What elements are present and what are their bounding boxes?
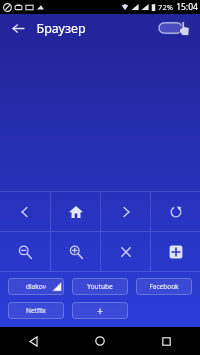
button[interactable]: diakov — [8, 278, 64, 295]
button[interactable]: Переключатель — [158, 18, 192, 38]
button[interactable]: Уменьшить — [0, 232, 50, 271]
button[interactable]: Закрыть — [101, 232, 150, 271]
button[interactable]: Обновить — [151, 192, 200, 231]
button[interactable]: Netflix — [8, 302, 64, 319]
button[interactable]: Вперёд — [101, 192, 150, 231]
button[interactable]: Увеличить — [51, 232, 100, 271]
button[interactable]: Youtube — [72, 278, 128, 295]
button[interactable]: Домой — [51, 192, 100, 231]
staticText: Facebook — [149, 282, 179, 291]
button[interactable]: Facebook — [136, 278, 192, 295]
staticText: 72% — [158, 2, 173, 12]
staticText: 15:04 — [176, 1, 198, 13]
button[interactable]: Назад — [0, 192, 50, 231]
button[interactable]: Домой — [66, 327, 133, 355]
button[interactable]: + — [72, 302, 128, 319]
staticText: diakov — [26, 282, 46, 291]
staticText: Браузер — [36, 20, 86, 37]
button[interactable]: Назад — [0, 327, 66, 355]
staticText: Youtube — [87, 282, 113, 291]
staticText: + — [97, 304, 103, 318]
button[interactable]: Назад — [8, 18, 28, 38]
staticText: Netflix — [26, 306, 46, 315]
button[interactable]: Недавние — [133, 327, 200, 355]
button[interactable]: Новая вкладка — [151, 232, 200, 271]
